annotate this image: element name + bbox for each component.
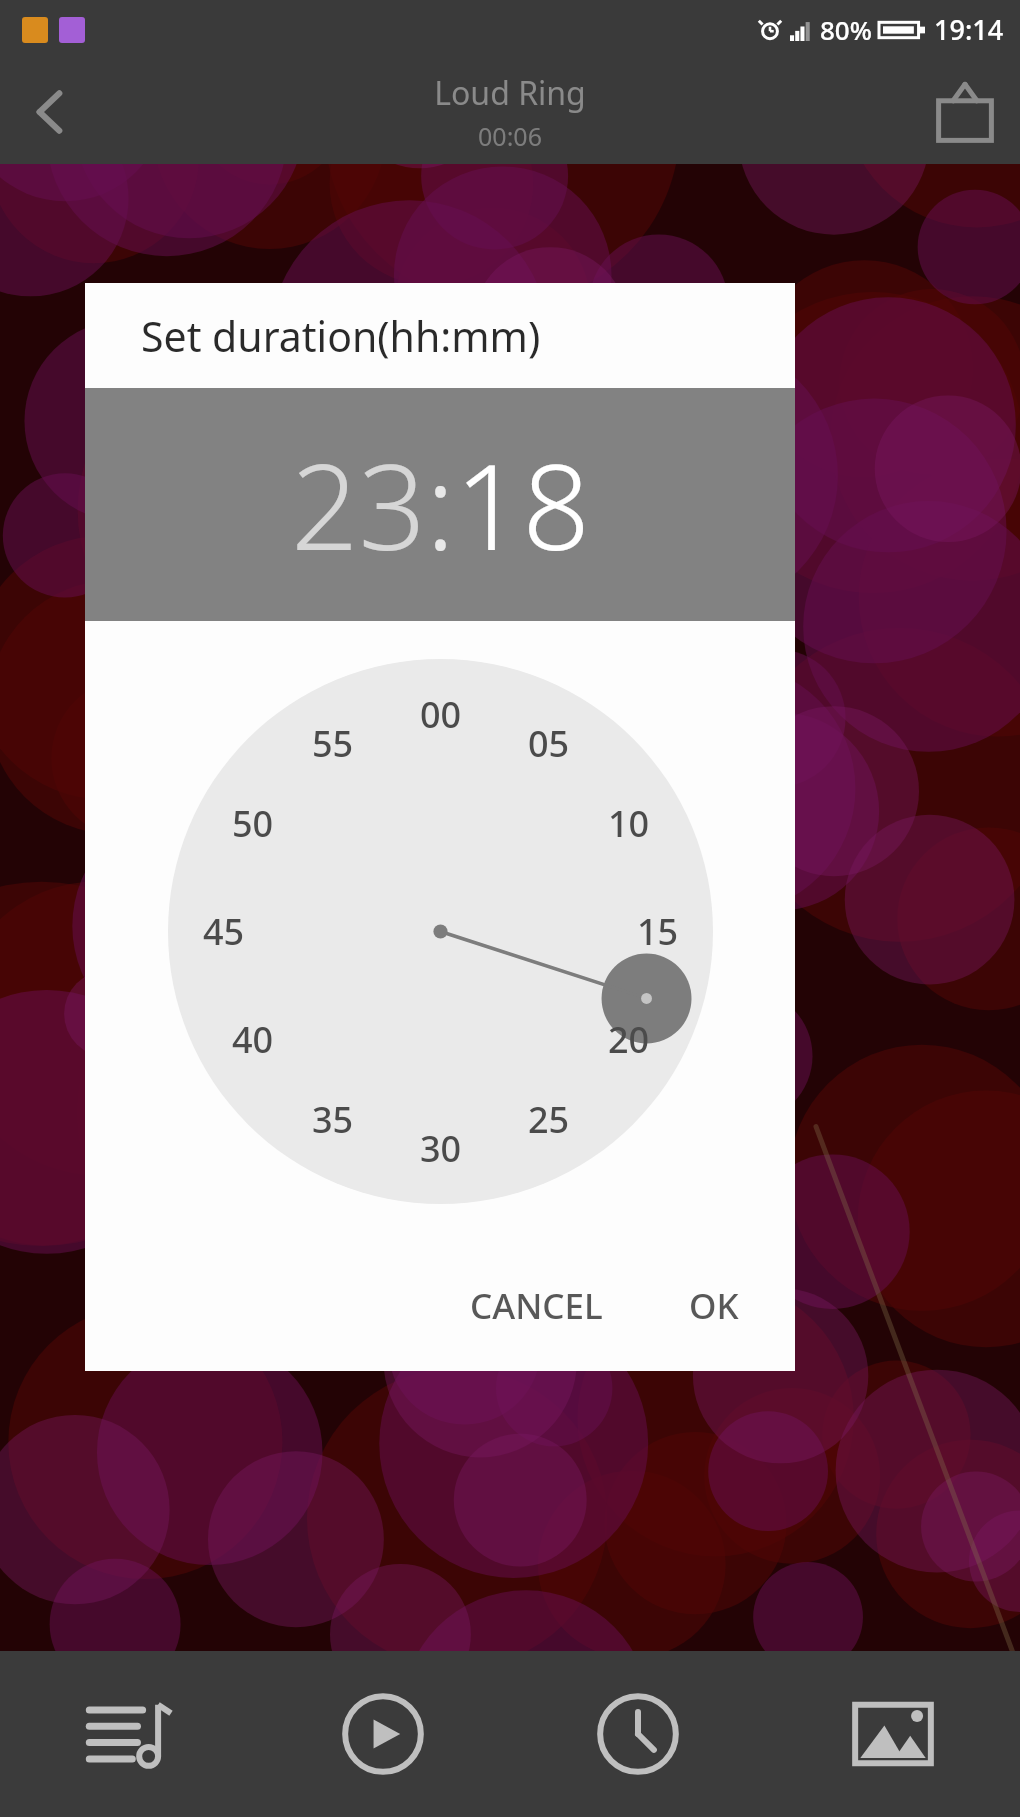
- staticText: 00: [420, 690, 462, 739]
- staticText: 45: [203, 907, 245, 956]
- staticText: Loud Ring: [434, 71, 586, 115]
- staticText: 10: [608, 799, 650, 848]
- staticText: 40: [232, 1015, 274, 1064]
- staticText: 50: [232, 799, 274, 848]
- button[interactable]: Back: [0, 62, 100, 162]
- staticText: 19:14: [934, 11, 1004, 48]
- staticText: 00:06: [478, 119, 542, 153]
- button[interactable]: Play: [255, 1651, 510, 1817]
- button[interactable]: Playlist: [0, 1651, 255, 1817]
- button[interactable]: OK: [663, 1264, 765, 1348]
- button[interactable]: Store: [910, 59, 1020, 164]
- staticText: CANCEL: [470, 1282, 603, 1330]
- button[interactable]: Minute dial: [168, 659, 713, 1204]
- staticText: 55: [312, 719, 354, 768]
- staticText: Set duration(hh:mm): [141, 308, 541, 364]
- staticText: 05: [528, 719, 570, 768]
- staticText: :: [426, 424, 455, 585]
- staticText: 20: [608, 1015, 650, 1064]
- button[interactable]: Gallery: [765, 1651, 1020, 1817]
- staticText: 15: [637, 907, 679, 956]
- staticText: OK: [689, 1282, 739, 1330]
- staticText: 23: [291, 424, 426, 585]
- staticText: 30: [420, 1124, 462, 1173]
- staticText: 80%: [820, 12, 872, 47]
- button[interactable]: Timer: [510, 1651, 765, 1817]
- button[interactable]: CANCEL: [444, 1264, 629, 1348]
- staticText: 18: [455, 424, 590, 585]
- staticText: 35: [312, 1095, 354, 1144]
- staticText: 25: [528, 1095, 570, 1144]
